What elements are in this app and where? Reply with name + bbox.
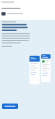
button[interactable] (2, 103, 18, 109)
